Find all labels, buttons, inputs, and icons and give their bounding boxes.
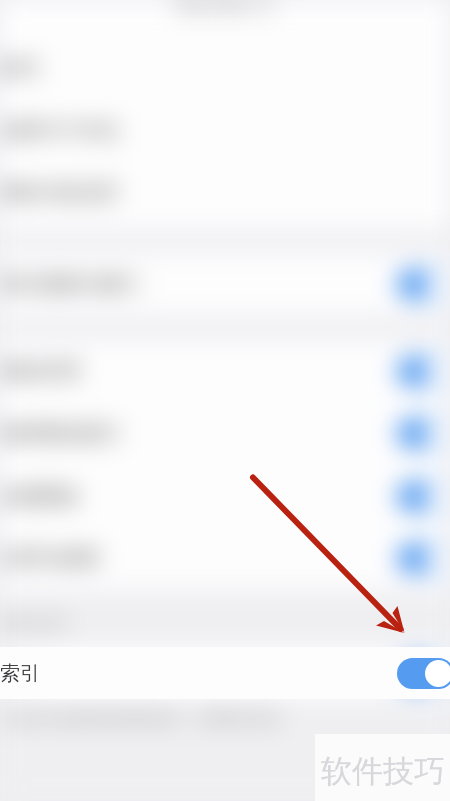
button[interactable]: 桌面与个性化 bbox=[0, 99, 450, 161]
staticText: 应用与权限 bbox=[0, 546, 100, 571]
staticText: 通知与状态栏 bbox=[0, 180, 120, 205]
button[interactable]: Switch on bbox=[397, 418, 450, 449]
staticText: 系统导航方式 bbox=[174, 0, 276, 14]
staticText: 账号 bbox=[0, 56, 40, 81]
staticText: 索引 bbox=[0, 661, 40, 686]
button[interactable]: 应用与权限 bbox=[0, 527, 450, 590]
button[interactable]: 索引 bbox=[0, 647, 450, 699]
button[interactable]: Switch on bbox=[397, 658, 450, 689]
staticText: 锁屏通知显示 bbox=[0, 421, 120, 446]
button[interactable]: Switch on bbox=[397, 356, 450, 387]
button[interactable]: Switch on bbox=[397, 269, 450, 300]
button[interactable]: 账号 bbox=[0, 37, 450, 99]
button[interactable]: 桌面图标 bbox=[0, 465, 450, 527]
button[interactable]: 索引 bbox=[0, 647, 450, 699]
button[interactable]: Switch on bbox=[397, 481, 450, 512]
staticText: 通知管理 bbox=[0, 359, 80, 384]
staticText: 软件技巧 bbox=[321, 752, 445, 791]
button[interactable]: 锁屏通知显示 bbox=[0, 402, 450, 465]
button[interactable]: 通知与状态栏 bbox=[0, 161, 450, 223]
staticText: 桌面与个性化 bbox=[0, 118, 120, 143]
button[interactable]: 显示搜索与索引 bbox=[0, 253, 450, 315]
staticText: 索引 bbox=[0, 661, 40, 686]
button[interactable]: 通知管理 bbox=[0, 340, 450, 402]
button[interactable]: Switch on bbox=[397, 658, 450, 689]
staticText: 桌面图标 bbox=[0, 484, 80, 509]
staticText: 显示搜索与索引 bbox=[0, 272, 140, 297]
button[interactable]: Switch on bbox=[397, 543, 450, 574]
